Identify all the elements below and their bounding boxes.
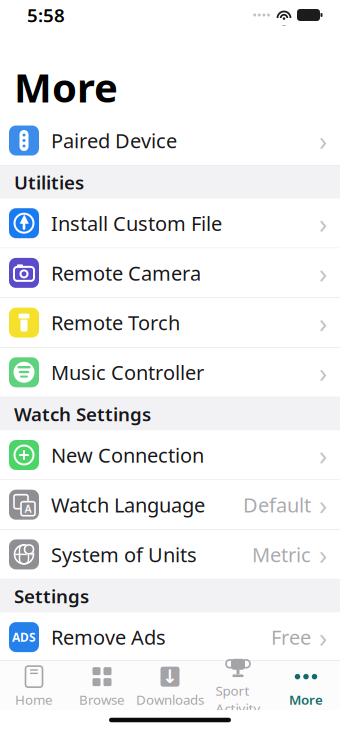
staticText: Music Controller	[51, 359, 204, 386]
staticText: Install Custom File	[51, 210, 222, 236]
button[interactable]: ↓	[136, 659, 204, 712]
button[interactable]: More	[272, 659, 340, 712]
staticText: Remote Torch	[51, 309, 180, 336]
staticText: ▲	[19, 211, 28, 225]
staticText: Default	[243, 491, 311, 518]
staticText: Downloads	[136, 691, 204, 708]
staticText: More	[14, 60, 118, 113]
button[interactable]: Sport Activity	[204, 650, 272, 721]
staticText: Watch Language	[51, 491, 205, 518]
staticText: Remove Ads	[51, 624, 166, 650]
staticText: ›	[319, 123, 327, 158]
button[interactable]: ▲	[0, 199, 340, 248]
staticText: ›	[319, 487, 327, 522]
button[interactable]: ADS	[0, 613, 340, 662]
staticText: Sport Activity	[215, 682, 260, 717]
staticText: Remote Camera	[51, 260, 201, 286]
staticText: ADS	[12, 679, 36, 695]
staticText: Browse	[79, 691, 125, 708]
staticText: Paired Device	[51, 127, 177, 154]
button[interactable]: Remote Torch	[0, 298, 340, 348]
staticText: ›	[319, 537, 327, 572]
staticText: New Connection	[51, 442, 204, 468]
button[interactable]: ADS	[0, 662, 340, 712]
staticText: ›	[319, 305, 327, 340]
staticText: ›	[319, 437, 327, 473]
button[interactable]: Music Controller	[0, 348, 340, 397]
staticText: Home	[15, 691, 53, 708]
staticText: A	[24, 502, 31, 516]
staticText: 5:58	[27, 3, 65, 27]
button[interactable]: New Connection	[0, 430, 340, 480]
button[interactable]: Browse	[68, 659, 136, 712]
staticText: ↓	[162, 666, 178, 687]
staticText: Restore Purchase	[51, 673, 213, 700]
staticText: ›	[319, 355, 327, 390]
button[interactable]: Paired Device	[0, 116, 340, 166]
staticText: ›	[319, 255, 327, 291]
staticText: Free	[271, 624, 311, 650]
staticText: ›	[319, 669, 327, 704]
button[interactable]: System of Units	[0, 530, 340, 580]
staticText: Watch Settings	[14, 402, 151, 426]
button[interactable]: Remote Camera	[0, 248, 340, 298]
button[interactable]: Home	[0, 659, 68, 712]
staticText: More	[289, 691, 323, 708]
staticText: Metric	[252, 541, 311, 568]
staticText: ADS	[12, 629, 36, 645]
staticText: ›	[319, 619, 327, 655]
button[interactable]: A	[0, 480, 340, 530]
staticText: System of Units	[51, 541, 197, 568]
staticText: ›	[319, 205, 327, 241]
staticText: Utilities	[14, 170, 84, 195]
staticText: Settings	[14, 584, 89, 608]
